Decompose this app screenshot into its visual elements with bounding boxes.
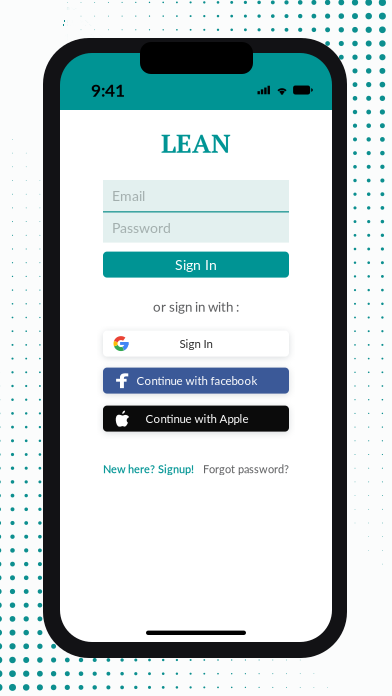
staticText: Continue with Apple — [145, 412, 248, 425]
button[interactable]: Sign In — [103, 252, 289, 278]
staticText: Sign In — [175, 256, 217, 273]
staticText: Forgot password? — [203, 462, 289, 476]
staticText: Email — [112, 187, 145, 204]
button[interactable]: New here? Signup! — [103, 462, 194, 476]
staticText: LEAN — [161, 126, 231, 160]
staticText: Sign In — [179, 337, 212, 350]
button[interactable]: Continue with facebook — [103, 368, 289, 394]
button[interactable]: Continue with Apple — [103, 406, 289, 432]
staticText: or sign in with : — [153, 299, 239, 315]
staticText: Continue with facebook — [136, 374, 257, 387]
staticText: Password — [112, 219, 171, 236]
staticText: 9:41 — [91, 80, 125, 100]
staticText: New here? Signup! — [103, 462, 194, 476]
button[interactable]: Forgot password? — [203, 462, 289, 476]
button[interactable]: Sign In — [103, 331, 289, 357]
